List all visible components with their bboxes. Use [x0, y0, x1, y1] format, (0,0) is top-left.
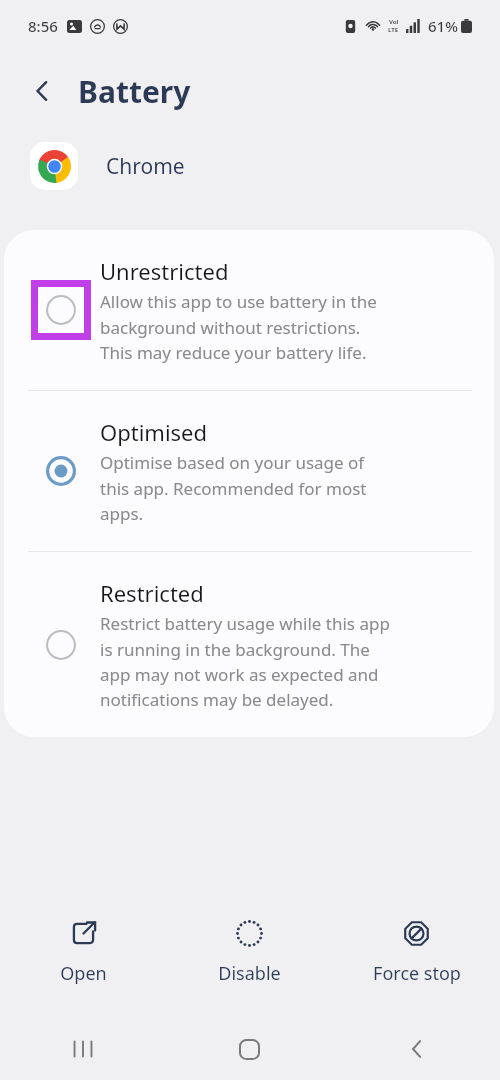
staticText: Optimise based on your usage of this app… — [100, 451, 367, 525]
staticText: Chrome — [106, 152, 185, 181]
button[interactable]: Optimised — [4, 391, 494, 551]
staticText: Disable — [218, 961, 281, 986]
staticText: 8:56 — [28, 16, 58, 36]
button[interactable]: Chrome — [0, 130, 500, 202]
staticText: Restrict battery usage while this app is… — [100, 612, 390, 711]
staticText: Unrestricted — [100, 256, 229, 286]
button[interactable]: Open — [0, 911, 166, 994]
staticText: Battery — [78, 71, 191, 112]
staticText: Vol — [389, 18, 399, 26]
button[interactable]: Unrestricted — [4, 230, 494, 390]
button[interactable]: Restricted — [4, 552, 494, 737]
staticText: Allow this app to use battery in the bac… — [100, 290, 377, 364]
button[interactable]: Back — [333, 1018, 500, 1080]
staticText: Force stop — [373, 961, 461, 986]
staticText: Optimised — [100, 417, 208, 447]
button[interactable]: Back — [18, 67, 66, 115]
button[interactable]: Disable — [166, 911, 333, 994]
button[interactable]: Home — [166, 1018, 333, 1080]
staticText: Open — [60, 961, 107, 986]
staticText: Restricted — [100, 578, 204, 608]
button[interactable]: Force stop — [333, 911, 500, 994]
staticText: 61% — [428, 16, 458, 36]
button[interactable]: Recents — [0, 1018, 166, 1080]
staticText: LTE — [388, 26, 399, 34]
